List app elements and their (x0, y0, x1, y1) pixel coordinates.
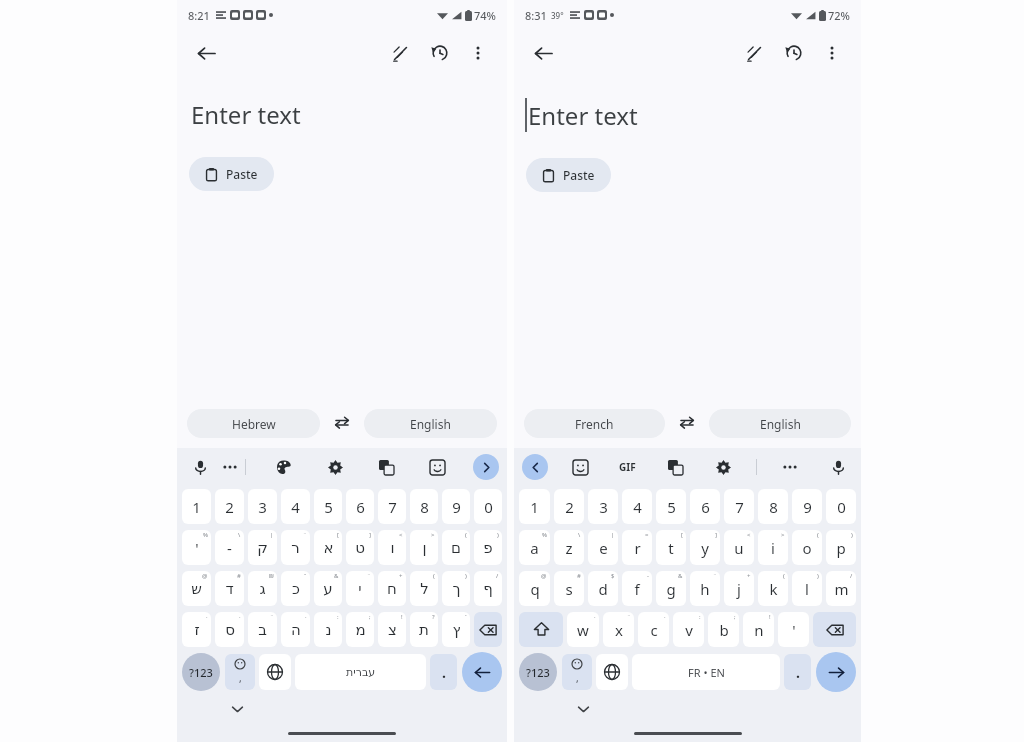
button[interactable]: 5 (314, 489, 342, 524)
button[interactable]: ך (442, 571, 470, 606)
button[interactable]: English (364, 409, 497, 438)
button[interactable]: j (724, 571, 754, 606)
button[interactable]: ף (474, 571, 502, 606)
button[interactable]: 9 (792, 489, 822, 524)
button[interactable]: o (792, 530, 822, 565)
button[interactable]: Change language (596, 654, 628, 690)
button[interactable]: ?123 (182, 653, 220, 691)
button[interactable]: 0 (826, 489, 856, 524)
button[interactable]: More options (461, 36, 495, 70)
button[interactable]: q (519, 571, 550, 606)
button[interactable]: ת (410, 612, 438, 647)
button[interactable]: 2 (215, 489, 244, 524)
button[interactable]: x (603, 612, 634, 647)
button[interactable]: ה (281, 612, 310, 647)
button[interactable]: m (826, 571, 856, 606)
button[interactable]: a (519, 530, 550, 565)
button[interactable]: ד (215, 571, 244, 606)
button[interactable]: Voice input (185, 452, 215, 482)
button[interactable]: v (673, 612, 704, 647)
button[interactable]: GIF (612, 452, 642, 482)
button[interactable]: l (792, 571, 822, 606)
button[interactable]: More (215, 452, 245, 482)
button[interactable]: n (743, 612, 774, 647)
button[interactable]: s (554, 571, 584, 606)
button[interactable]: Stickers (565, 452, 595, 482)
button[interactable]: צ (378, 612, 406, 647)
button[interactable]: 8 (758, 489, 788, 524)
button[interactable]: א (314, 530, 342, 565)
button[interactable]: y (690, 530, 720, 565)
button[interactable]: ן (410, 530, 438, 565)
button[interactable]: ' (182, 530, 211, 565)
button[interactable]: Paste (526, 158, 611, 192)
button[interactable]: ר (281, 530, 310, 565)
button[interactable]: ז (182, 612, 211, 647)
button[interactable]: w (567, 612, 599, 647)
button[interactable]: 1 (182, 489, 211, 524)
button[interactable]: Translate (371, 452, 401, 482)
button[interactable]: 6 (690, 489, 720, 524)
button[interactable]: b (708, 612, 739, 647)
button[interactable]: ג (248, 571, 277, 606)
button[interactable]: ץ (442, 612, 470, 647)
button[interactable]: More (775, 452, 805, 482)
button[interactable]: ם (442, 530, 470, 565)
button[interactable]: 3 (588, 489, 618, 524)
button[interactable]: 4 (281, 489, 310, 524)
button[interactable]: Enter (816, 652, 856, 692)
button[interactable]: Paste (189, 157, 274, 191)
button[interactable]: k (758, 571, 788, 606)
button[interactable]: Handwriting (383, 36, 417, 70)
button[interactable]: 0 (474, 489, 502, 524)
button[interactable]: Hide keyboard (571, 697, 595, 721)
button[interactable]: Change language (259, 654, 291, 690)
button[interactable]: Backspace (474, 612, 502, 647)
button[interactable]: Swap languages (665, 408, 709, 438)
button[interactable]: h (690, 571, 720, 606)
button[interactable]: . (784, 654, 811, 690)
button[interactable]: Translate (660, 452, 690, 482)
button[interactable]: נ (314, 612, 342, 647)
button[interactable]: Themes (268, 452, 298, 482)
button[interactable]: f (622, 571, 652, 606)
button[interactable]: Hide keyboard (225, 697, 249, 721)
button[interactable]: 5 (656, 489, 686, 524)
button[interactable]: English (709, 409, 851, 438)
button[interactable]: c (638, 612, 669, 647)
button[interactable]: d (588, 571, 618, 606)
button[interactable]: u (724, 530, 754, 565)
button[interactable]: פ (474, 530, 502, 565)
button[interactable]: FR • EN (632, 654, 780, 690)
button[interactable]: Back (526, 36, 560, 70)
button[interactable]: ק (248, 530, 277, 565)
button[interactable]: z (554, 530, 584, 565)
button[interactable]: Shift (519, 612, 563, 647)
button[interactable]: Settings (708, 452, 738, 482)
button[interactable]: . (430, 654, 457, 690)
button[interactable]: 7 (724, 489, 754, 524)
button[interactable]: ב (248, 612, 277, 647)
button[interactable]: Swap languages (320, 408, 364, 438)
button[interactable]: History (777, 36, 811, 70)
button[interactable]: t (656, 530, 686, 565)
button[interactable]: Expand toolbar (473, 454, 499, 480)
button[interactable]: ל (410, 571, 438, 606)
button[interactable]: e (588, 530, 618, 565)
button[interactable]: ו (378, 530, 406, 565)
button[interactable]: Voice input (823, 452, 853, 482)
button[interactable]: 9 (442, 489, 470, 524)
button[interactable]: 7 (378, 489, 406, 524)
button[interactable]: Hebrew (187, 409, 320, 438)
button[interactable]: 8 (410, 489, 438, 524)
button[interactable]: מ (346, 612, 374, 647)
button[interactable]: Back (189, 36, 223, 70)
button[interactable]: Backspace (813, 612, 856, 647)
button[interactable]: Emoji and comma (225, 654, 255, 690)
button[interactable]: g (656, 571, 686, 606)
button[interactable]: 6 (346, 489, 374, 524)
button[interactable]: Stickers (422, 452, 452, 482)
button[interactable]: ' (778, 612, 809, 647)
button[interactable]: i (758, 530, 788, 565)
button[interactable]: French (524, 409, 665, 438)
